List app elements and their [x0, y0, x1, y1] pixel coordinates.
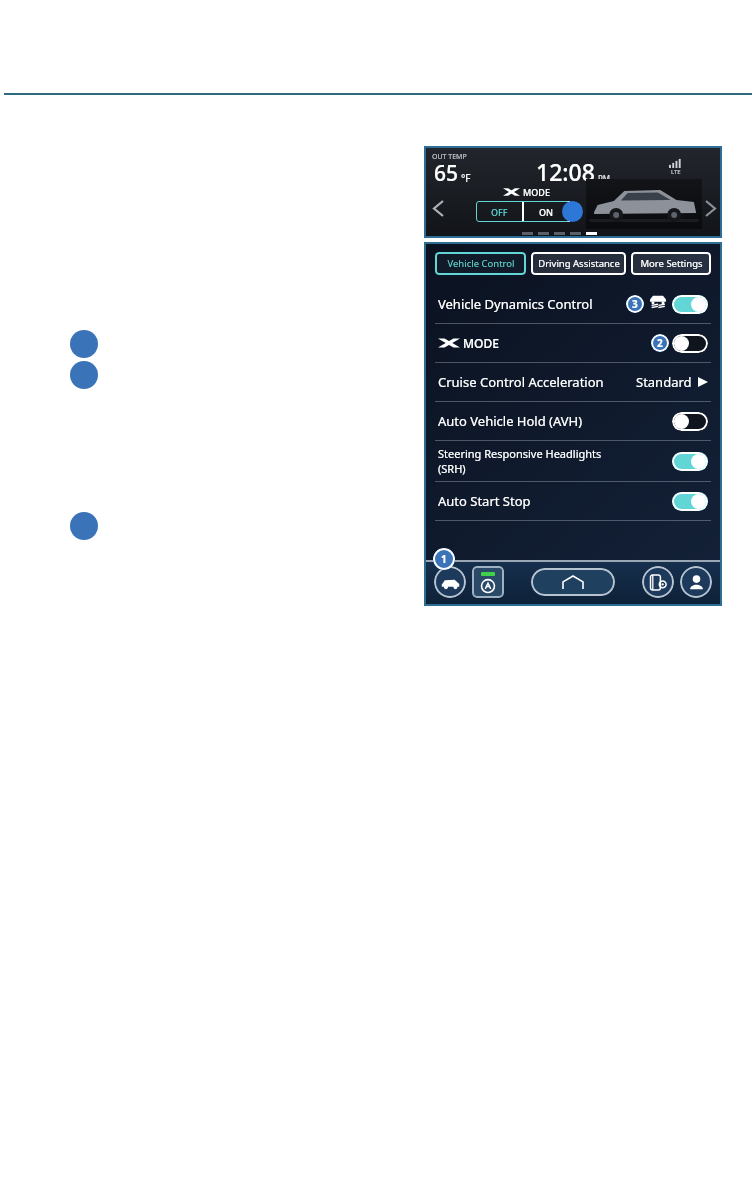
staticText: OUT TEMP — [432, 152, 467, 162]
button[interactable]: Off — [672, 334, 708, 353]
staticText: Vehicle Dynamics Control — [438, 295, 593, 313]
staticText: °F — [461, 171, 471, 185]
staticText: 12:08 — [536, 156, 595, 187]
staticText: (SRH) — [438, 461, 466, 476]
button[interactable]: Home — [531, 568, 615, 596]
staticText: ON — [539, 206, 554, 218]
button[interactable]: Vehicle Control — [435, 252, 526, 275]
button[interactable] — [70, 330, 98, 358]
button[interactable]: Vehicle — [434, 566, 466, 598]
staticText: LTE — [671, 168, 681, 176]
staticText: 2 — [657, 336, 663, 350]
button[interactable] — [70, 512, 98, 540]
button[interactable]: On — [672, 452, 708, 471]
button[interactable]: On — [672, 295, 708, 314]
staticText: OFF — [491, 206, 508, 218]
staticText: 1 — [441, 552, 447, 566]
button[interactable]: Auto Start Stop — [472, 566, 504, 598]
button[interactable]: Off — [672, 412, 708, 431]
staticText: Auto Start Stop — [438, 492, 531, 510]
staticText: PM — [598, 173, 611, 184]
staticText: 3 — [632, 297, 638, 311]
button[interactable]: Cruise Control Acceleration — [435, 363, 711, 401]
button[interactable] — [70, 361, 98, 389]
staticText: MODE — [463, 335, 499, 351]
staticText: Steering Responsive Headlights — [438, 446, 602, 461]
staticText: Driving Assistance — [538, 257, 620, 270]
button[interactable]: OFF — [476, 201, 522, 222]
button[interactable]: On — [672, 492, 708, 511]
button[interactable] — [562, 201, 583, 222]
button[interactable]: Auto Start Stop — [435, 482, 711, 520]
button[interactable]: Auto Vehicle Hold (AVH) — [435, 402, 711, 440]
staticText: Auto Vehicle Hold (AVH) — [438, 412, 583, 430]
button[interactable]: Vehicle Dynamics Control — [435, 285, 711, 323]
button[interactable]: Steering Responsive Headlights — [435, 441, 711, 481]
staticText: MODE — [523, 186, 550, 198]
button[interactable]: Next — [700, 198, 720, 218]
staticText: 65 — [434, 159, 459, 188]
button[interactable]: Previous — [428, 198, 448, 218]
staticText: Standard — [636, 373, 692, 391]
button[interactable]: Apps — [642, 566, 674, 598]
button[interactable]: ON — [523, 201, 570, 222]
button[interactable]: More Settings — [631, 252, 711, 275]
staticText: More Settings — [640, 257, 703, 270]
button[interactable]: Profile — [680, 566, 712, 598]
button[interactable]: MODE — [435, 324, 711, 362]
button[interactable]: Driving Assistance — [531, 252, 626, 275]
staticText: Cruise Control Acceleration — [438, 373, 604, 391]
staticText: Vehicle Control — [447, 257, 515, 270]
